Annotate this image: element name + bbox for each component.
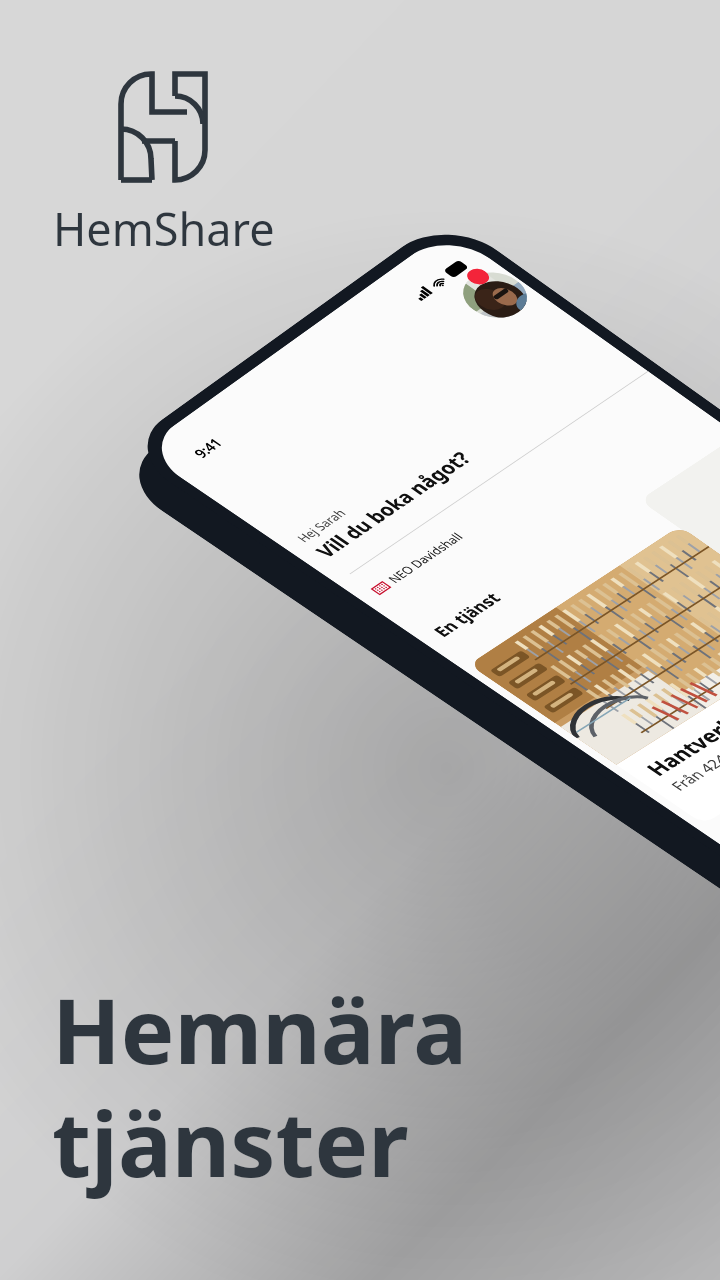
staticText: Från 424 kr: [666, 742, 720, 794]
button[interactable]: [639, 435, 720, 687]
staticText: Hemnära: [52, 968, 468, 1091]
staticText: Vill du boka något?: [309, 446, 477, 562]
staticText: En tjänst: [428, 588, 507, 641]
staticText: Hantverkare: [638, 694, 720, 781]
staticText: Hej Sarah: [293, 506, 350, 545]
staticText: tjänster: [52, 1081, 409, 1204]
button[interactable]: NEO Davidshall: [368, 529, 467, 596]
button[interactable]: Hantverkare: [469, 526, 720, 824]
staticText: NEO Davidshall: [384, 529, 467, 586]
staticText: 9:41: [189, 435, 227, 461]
staticText: HemShare: [53, 198, 275, 259]
button[interactable]: Profile: [450, 263, 540, 327]
